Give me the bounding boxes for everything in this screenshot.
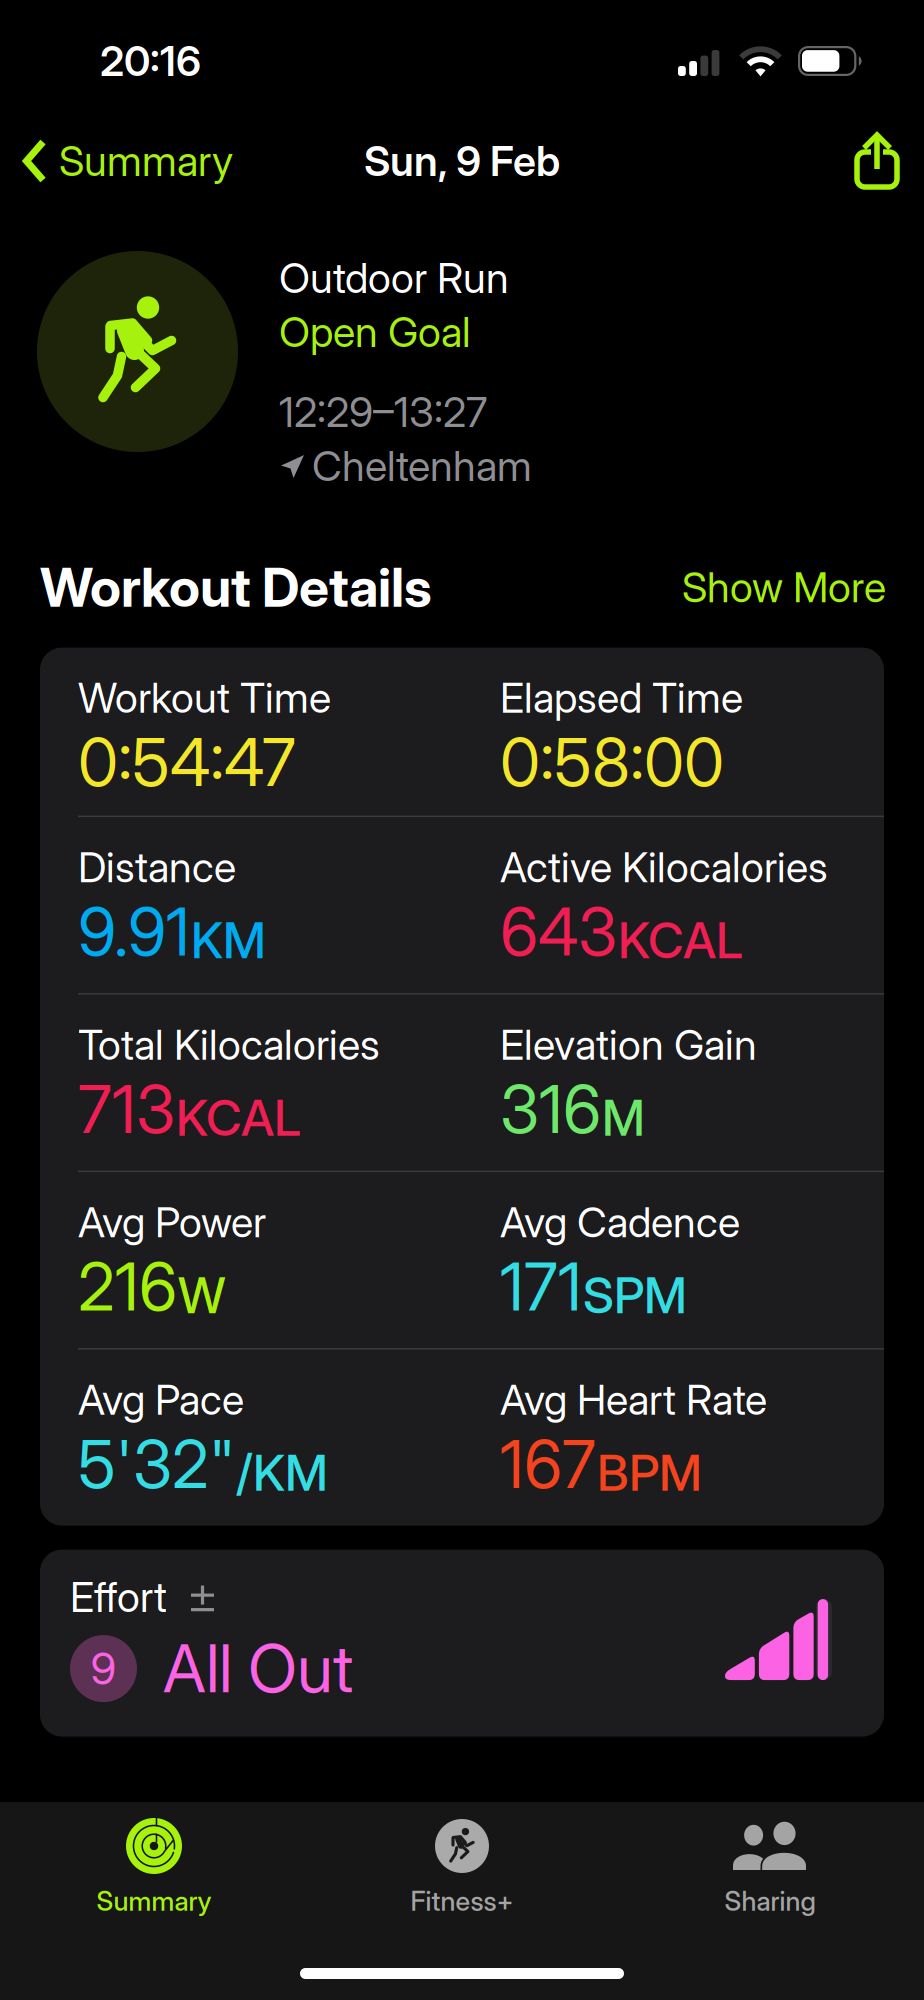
staticText: Summary xyxy=(96,1885,211,1917)
staticText: 216 xyxy=(78,1247,177,1326)
staticText: Workout Details xyxy=(40,555,432,620)
staticText: 167 xyxy=(500,1425,596,1504)
staticText: 12:29–13:27 xyxy=(279,387,487,437)
staticText: KCAL xyxy=(618,910,743,970)
staticText: KM xyxy=(191,910,266,970)
button[interactable]: Summary xyxy=(0,1802,308,1927)
staticText: Total Kilocalories xyxy=(78,1020,380,1070)
staticText: Avg Pace xyxy=(78,1375,244,1425)
button[interactable]: Show More xyxy=(682,562,886,612)
staticText: Workout Time xyxy=(78,673,331,723)
staticText: Avg Heart Rate xyxy=(500,1375,767,1425)
staticText: 0:54:47 xyxy=(78,723,296,802)
button[interactable]: Fitness+ xyxy=(308,1802,616,1927)
staticText: Avg Cadence xyxy=(500,1197,740,1247)
staticText: 643 xyxy=(500,892,617,971)
staticText: M xyxy=(602,1088,645,1148)
staticText: Sun, 9 Feb xyxy=(364,136,560,186)
staticText: Summary xyxy=(59,136,233,186)
staticText: SPM xyxy=(583,1265,687,1325)
staticText: 171 xyxy=(500,1247,582,1326)
staticText: Open Goal xyxy=(279,307,471,357)
staticText: Outdoor Run xyxy=(279,253,509,303)
staticText: KCAL xyxy=(176,1088,301,1148)
staticText: Fitness+ xyxy=(410,1885,513,1917)
staticText: Cheltenham xyxy=(312,441,532,491)
staticText: Effort xyxy=(70,1572,167,1622)
staticText: 713 xyxy=(78,1070,175,1149)
staticText: Elevation Gain xyxy=(500,1020,757,1070)
staticText: W xyxy=(178,1265,226,1325)
staticText: 0:58:00 xyxy=(500,723,724,802)
staticText: 9 xyxy=(90,1642,116,1695)
staticText: Active Kilocalories xyxy=(500,842,828,892)
staticText: BPM xyxy=(597,1443,702,1503)
staticText: 9.91 xyxy=(78,892,190,971)
button[interactable]: Share xyxy=(833,120,924,202)
staticText: /KM xyxy=(236,1443,328,1503)
staticText: Show More xyxy=(682,562,886,612)
staticText: Sharing xyxy=(724,1885,815,1917)
button[interactable]: Summary xyxy=(0,124,249,198)
staticText: Distance xyxy=(78,842,236,892)
staticText: Avg Power xyxy=(78,1197,266,1247)
button[interactable]: Sharing xyxy=(616,1802,924,1927)
staticText: 20:16 xyxy=(100,36,201,86)
staticText: Elapsed Time xyxy=(500,673,743,723)
staticText: 316 xyxy=(500,1070,601,1149)
staticText: All Out xyxy=(163,1629,353,1708)
staticText: 5'32" xyxy=(78,1425,235,1504)
